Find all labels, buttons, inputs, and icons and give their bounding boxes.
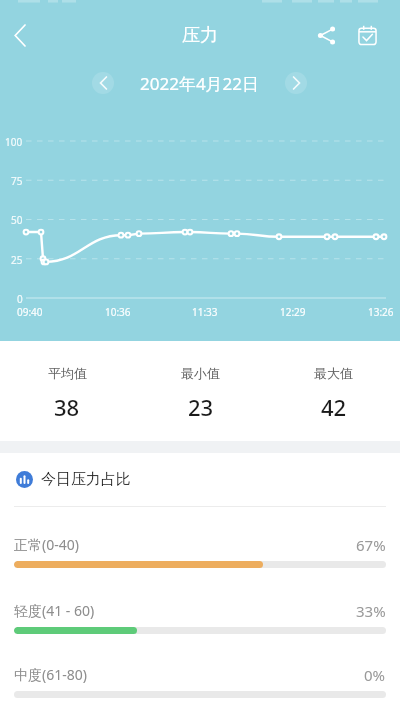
button[interactable]: Back <box>0 13 42 57</box>
staticText: 67% <box>356 535 386 553</box>
staticText: 42 <box>321 392 347 422</box>
staticText: 38 <box>54 392 80 422</box>
button[interactable]: Calendar <box>345 13 389 57</box>
staticText: 0 <box>17 292 23 305</box>
staticText: 25 <box>11 253 23 266</box>
staticText: 12:29 <box>280 305 306 318</box>
staticText: 最小值 <box>181 365 220 381</box>
button[interactable]: 今日压力占比 <box>0 453 400 506</box>
staticText: 今日压力占比 <box>41 470 131 489</box>
staticText: 平均值 <box>48 365 87 381</box>
button[interactable]: Previous day <box>92 72 114 94</box>
staticText: 轻度(41 - 60) <box>14 601 95 619</box>
staticText: 0% <box>364 665 386 683</box>
staticText: 中度(61-80) <box>14 665 87 683</box>
staticText: 23 <box>188 392 214 422</box>
staticText: 09:40 <box>17 305 43 318</box>
staticText: 33% <box>356 601 386 619</box>
staticText: 50 <box>11 213 23 226</box>
staticText: 最大值 <box>314 365 353 381</box>
staticText: 100 <box>5 135 23 148</box>
staticText: 11:33 <box>192 305 218 318</box>
button[interactable]: Next day <box>285 72 307 94</box>
staticText: 压力 <box>182 24 218 47</box>
staticText: 10:36 <box>105 305 131 318</box>
staticText: 2022年4月22日 <box>140 72 260 95</box>
button[interactable]: Share <box>304 13 348 57</box>
staticText: 正常(0-40) <box>14 535 79 553</box>
staticText: 75 <box>11 174 23 187</box>
staticText: 13:26 <box>368 305 394 318</box>
